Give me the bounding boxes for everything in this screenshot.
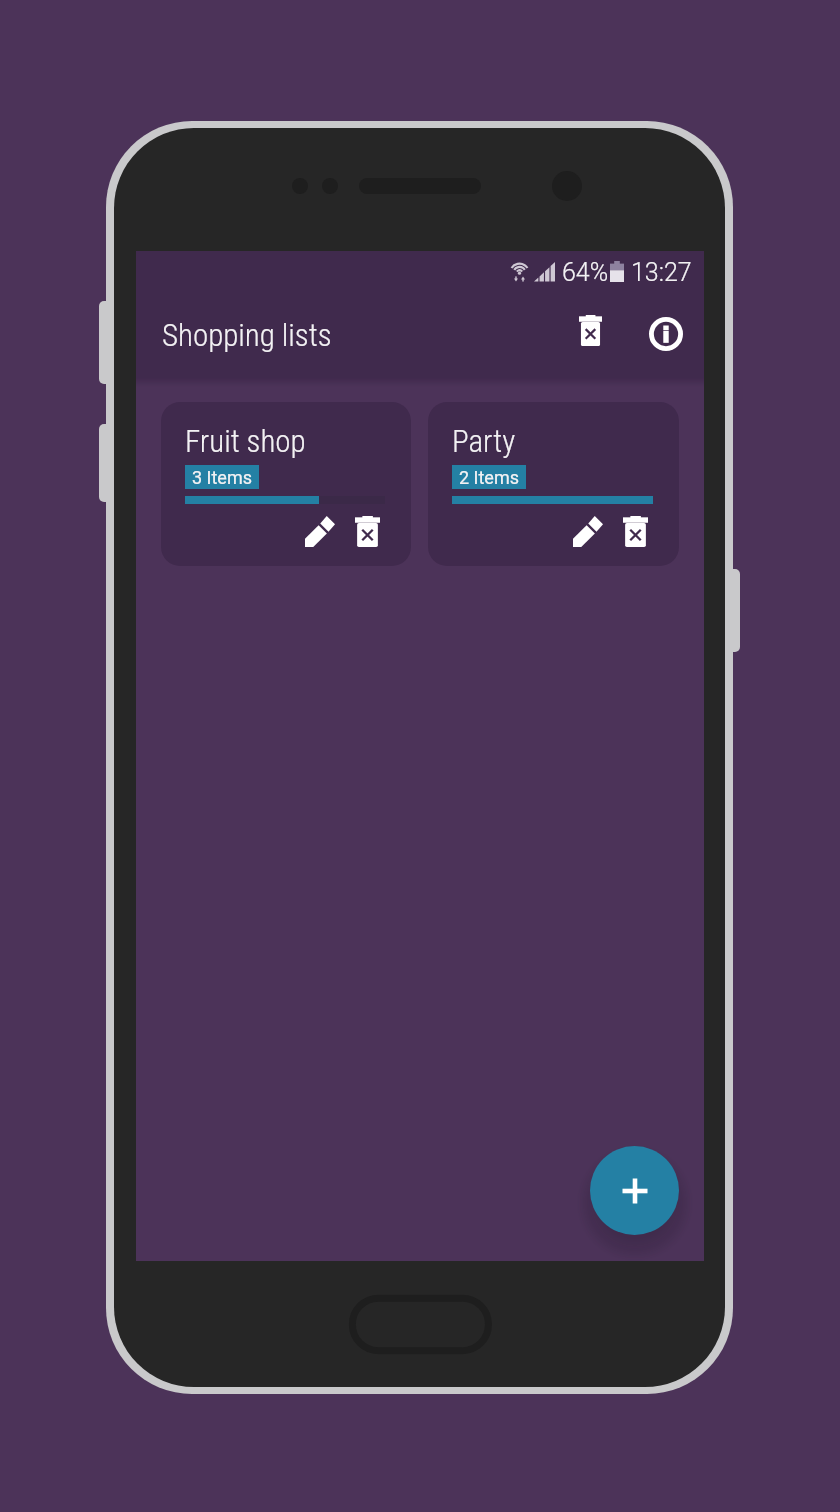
button[interactable]: Edit Party: [565, 508, 611, 554]
staticText: Fruit shop: [185, 423, 306, 459]
button[interactable]: Delete all lists: [555, 295, 625, 365]
button[interactable]: Delete Party: [612, 508, 658, 554]
button[interactable]: Edit Fruit shop: [297, 508, 343, 554]
staticText: Party: [452, 423, 516, 459]
staticText: 13:27: [631, 258, 692, 287]
button[interactable]: Party: [428, 402, 679, 566]
staticText: Shopping lists: [162, 317, 332, 353]
staticText: 2 Items: [459, 467, 519, 488]
staticText: 3 Items: [192, 467, 252, 488]
button[interactable]: Delete Fruit shop: [344, 508, 390, 554]
button[interactable]: Fruit shop: [161, 402, 411, 566]
button[interactable]: Add list: [590, 1146, 679, 1235]
staticText: 64%: [562, 258, 609, 287]
button[interactable]: Info: [631, 299, 701, 369]
